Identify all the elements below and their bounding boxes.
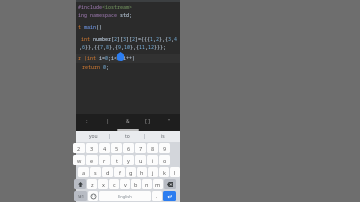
staticText: m <box>155 181 161 188</box>
button[interactable]: b <box>131 179 141 189</box>
staticText: i <box>152 157 154 164</box>
staticText: to <box>125 133 130 140</box>
button[interactable]: 5 <box>111 143 122 153</box>
staticText: r <box>103 157 106 164</box>
staticText: h <box>140 169 144 176</box>
button[interactable]: " <box>160 114 178 128</box>
staticText: k <box>163 169 166 176</box>
button[interactable]: is <box>145 131 180 142</box>
staticText: 5 <box>115 145 119 152</box>
staticText: " <box>167 117 171 125</box>
button[interactable]: Space <box>99 191 151 201</box>
staticText: e <box>90 157 94 164</box>
button[interactable]: j <box>148 167 158 177</box>
staticText: z <box>91 181 94 188</box>
button[interactable]: : <box>78 114 96 128</box>
staticText: c <box>113 181 116 188</box>
button[interactable]: d <box>102 167 113 177</box>
button[interactable]: x <box>98 179 108 189</box>
button[interactable]: y <box>123 155 134 165</box>
staticText: 3 <box>90 145 94 152</box>
button[interactable]: to <box>110 131 145 142</box>
button[interactable]: m <box>153 179 163 189</box>
button[interactable]: k <box>159 167 169 177</box>
button[interactable]: 2 <box>73 143 85 153</box>
staticText: n <box>145 181 149 188</box>
button[interactable]: Shift <box>74 179 86 189</box>
button[interactable]: Enter <box>163 191 176 201</box>
staticText: ing namespace std; <box>78 12 133 19</box>
button[interactable]: c <box>109 179 119 189</box>
button[interactable]: w <box>73 155 85 165</box>
staticText: w <box>77 157 82 164</box>
staticText: return 0; <box>82 64 110 71</box>
staticText: : <box>85 117 89 125</box>
staticText: is <box>161 133 165 140</box>
staticText: 4 <box>103 145 107 152</box>
staticText: j <box>152 169 154 176</box>
button[interactable]: Emoji <box>88 191 98 201</box>
staticText: !#1 <box>78 194 84 199</box>
staticText: l <box>174 169 176 176</box>
button[interactable]: 9 <box>159 143 170 153</box>
button[interactable]: f <box>114 167 125 177</box>
staticText: r (int i=0;i<2;i++) <box>78 55 136 62</box>
button[interactable]: 6 <box>123 143 134 153</box>
button[interactable]: e <box>86 155 98 165</box>
staticText: you <box>89 133 98 140</box>
button[interactable]: [] <box>139 114 157 128</box>
staticText: ,6}},{{7,8},{9,10},{11,12}}}; <box>79 44 167 51</box>
staticText: o <box>163 157 167 164</box>
button[interactable]: Backspace <box>164 179 176 189</box>
button[interactable]: u <box>135 155 146 165</box>
button[interactable]: 8 <box>147 143 158 153</box>
staticText: . <box>156 193 158 200</box>
button[interactable]: a <box>78 167 89 177</box>
button[interactable]: t <box>111 155 122 165</box>
button[interactable]: & <box>119 114 137 128</box>
staticText: #include<iostream> <box>78 4 133 11</box>
button[interactable]: Text cursor handle <box>117 52 124 61</box>
button[interactable]: v <box>120 179 130 189</box>
staticText: d <box>106 169 110 176</box>
staticText: u <box>139 157 143 164</box>
staticText: y <box>127 157 130 164</box>
button[interactable]: you <box>76 131 110 142</box>
button[interactable]: r <box>99 155 110 165</box>
button[interactable]: 3 <box>86 143 98 153</box>
staticText: 7 <box>139 145 143 152</box>
staticText: [] <box>144 117 152 125</box>
button[interactable]: l <box>170 167 180 177</box>
button[interactable]: z <box>87 179 97 189</box>
staticText: a <box>82 169 86 176</box>
button[interactable]: !#1 <box>74 191 87 201</box>
button[interactable]: g <box>126 167 136 177</box>
staticText: f <box>119 169 121 176</box>
button[interactable]: 4 <box>99 143 110 153</box>
staticText: x <box>102 181 105 188</box>
staticText: b <box>134 181 138 188</box>
button[interactable]: 7 <box>135 143 146 153</box>
button[interactable]: s <box>90 167 101 177</box>
staticText: & <box>126 117 130 125</box>
button[interactable]: h <box>137 167 147 177</box>
button[interactable]: | <box>99 114 117 128</box>
staticText: v <box>124 181 127 188</box>
staticText: English <box>118 194 132 199</box>
staticText: 6 <box>127 145 131 152</box>
staticText: 9 <box>163 145 167 152</box>
staticText: 2 <box>77 145 81 152</box>
staticText: s <box>94 169 97 176</box>
staticText: t <box>116 157 118 164</box>
staticText: g <box>129 169 133 176</box>
staticText: | <box>106 117 110 125</box>
button[interactable]: . <box>152 191 162 201</box>
button[interactable]: n <box>142 179 152 189</box>
staticText: 8 <box>151 145 155 152</box>
button[interactable]: o <box>159 155 170 165</box>
staticText: int number[2][3][2]={{{1,2},{3,4 <box>81 36 178 43</box>
button[interactable]: i <box>147 155 158 165</box>
staticText: t main() <box>78 24 103 31</box>
